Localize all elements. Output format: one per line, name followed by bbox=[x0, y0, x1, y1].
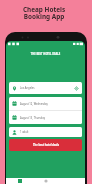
button[interactable]: Los Angeles bbox=[9, 82, 82, 94]
staticText: Cheap Hotels Booking App bbox=[0, 5, 90, 21]
staticText: 1 adult bbox=[20, 130, 29, 134]
staticText: The best hotel deals bbox=[33, 143, 59, 147]
other: Use my location bbox=[74, 86, 79, 91]
button[interactable]: The best hotel deals bbox=[9, 139, 82, 151]
staticText: August 13, Thursday bbox=[20, 116, 45, 120]
other: Search bbox=[44, 179, 48, 183]
staticText: Los Angeles bbox=[20, 86, 35, 90]
button[interactable]: 1 adult bbox=[9, 127, 82, 137]
staticText: August 12, Wednesday bbox=[20, 102, 48, 106]
staticText: THE BEST HOTEL DEALS bbox=[6, 52, 85, 56]
button[interactable]: August 12, Wednesday bbox=[9, 97, 82, 124]
